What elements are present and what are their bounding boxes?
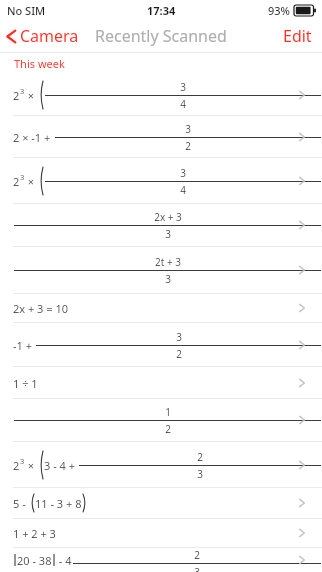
staticText: 1 ÷ 1 (13, 376, 38, 391)
staticText: Recently Scanned (95, 25, 227, 47)
staticText: 20 - 38 (17, 553, 52, 568)
staticText: 4 (180, 97, 186, 110)
staticText: 2 (197, 450, 203, 464)
staticText: - 4 (56, 553, 72, 568)
button[interactable]: 2 (0, 74, 322, 116)
staticText: Edit (283, 25, 312, 47)
button[interactable]: 2x + 3 (0, 204, 322, 247)
other: Open (296, 301, 310, 315)
other: Open (296, 263, 310, 277)
staticText: 3 (194, 565, 200, 572)
button[interactable]: 1 (0, 399, 322, 442)
staticText: 17:34 (147, 3, 176, 18)
staticText: 4 (180, 183, 186, 196)
button[interactable]: -1 + (0, 323, 322, 367)
staticText: 2 (194, 548, 200, 562)
staticText: 3 (197, 467, 203, 480)
button[interactable]: 2x + 3 = 10 (0, 294, 322, 323)
staticText: 2 (13, 458, 20, 473)
staticText: × (25, 88, 38, 103)
staticText: 2 (185, 139, 191, 152)
staticText: 2x + 3 = 10 (13, 301, 69, 316)
button[interactable]: 20 - 38 (0, 548, 322, 572)
staticText: × (25, 174, 38, 189)
staticText: This week (14, 56, 65, 71)
button[interactable]: 1 ÷ 1 (0, 367, 322, 399)
other: Open (296, 526, 310, 540)
other: Open (296, 376, 310, 390)
staticText: 2 × -1 + (13, 130, 54, 145)
other: Open (296, 496, 310, 510)
staticText: 3 - 4 + (44, 458, 78, 473)
staticText: -1 + (13, 338, 35, 353)
staticText: 3 (176, 330, 182, 344)
staticText: 2 (176, 347, 182, 360)
button[interactable]: 2 (0, 158, 322, 204)
other: Open (296, 174, 310, 188)
staticText: 3 (165, 272, 171, 285)
button[interactable]: 5 - (0, 488, 322, 519)
staticText: 2 (165, 422, 171, 435)
button[interactable]: 2 (0, 442, 322, 488)
staticText: 1 + 2 + 3 (13, 526, 56, 541)
button[interactable]: Edit (273, 21, 322, 51)
other: Open (296, 458, 310, 472)
other: Open (296, 338, 310, 352)
other: Open (296, 130, 310, 144)
other: Open (296, 218, 310, 232)
staticText: 1 (165, 405, 171, 419)
other: Open (296, 413, 310, 427)
staticText: 3 (20, 86, 25, 96)
staticText: 2 (13, 174, 20, 189)
staticText: 3 (180, 80, 186, 94)
staticText: 2x + 3 (154, 210, 182, 224)
other: Open (296, 88, 310, 102)
button[interactable]: Camera (0, 22, 87, 50)
staticText: × (25, 458, 38, 473)
other: Open (296, 553, 310, 567)
staticText: 3 (180, 166, 186, 180)
staticText: 11 - 3 + 8 (35, 496, 82, 511)
button[interactable]: 2 × -1 + (0, 116, 322, 158)
staticText: 3 (165, 227, 171, 240)
staticText: 5 - (13, 496, 29, 511)
button[interactable]: 1 + 2 + 3 (0, 519, 322, 548)
staticText: 3 (20, 172, 25, 182)
button[interactable]: 2t + 3 (0, 247, 322, 294)
staticText: No SIM (7, 3, 46, 18)
staticText: 2 (13, 88, 20, 103)
staticText: 2t + 3 (155, 255, 181, 269)
staticText: 3 (20, 456, 25, 466)
staticText: Camera (20, 25, 79, 47)
staticText: 3 (185, 122, 191, 136)
staticText: 93% (268, 3, 290, 18)
